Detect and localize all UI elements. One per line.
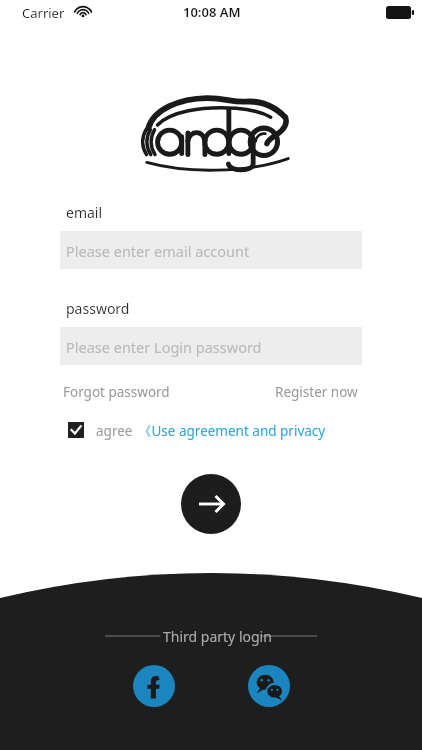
staticText: email: [66, 203, 103, 222]
button[interactable]: Please enter email account: [60, 231, 362, 269]
button[interactable]: Register now: [271, 381, 362, 403]
button[interactable]: Please enter Login password: [60, 327, 362, 365]
button[interactable]: Login: [181, 474, 241, 534]
button[interactable]: Sign in with Facebook: [133, 665, 175, 707]
button[interactable]: Forgot password: [60, 381, 170, 403]
staticText: Register now: [275, 383, 358, 401]
button[interactable]: Agree to terms checkbox: [66, 420, 86, 440]
button[interactable]: 《Use agreement and privacy policy》: [138, 419, 370, 441]
staticText: 10:08 AM: [183, 3, 241, 21]
staticText: Please enter email account: [66, 241, 250, 261]
staticText: 《Use agreement and privacy policy》: [138, 422, 370, 444]
staticText: password: [66, 299, 130, 318]
staticText: Please enter Login password: [66, 337, 262, 357]
button[interactable]: Sign in with WeChat: [248, 665, 290, 707]
staticText: Carrier: [22, 4, 65, 22]
staticText: Third party login: [163, 627, 272, 646]
staticText: Forgot password: [63, 383, 170, 401]
staticText: agree: [96, 422, 133, 440]
